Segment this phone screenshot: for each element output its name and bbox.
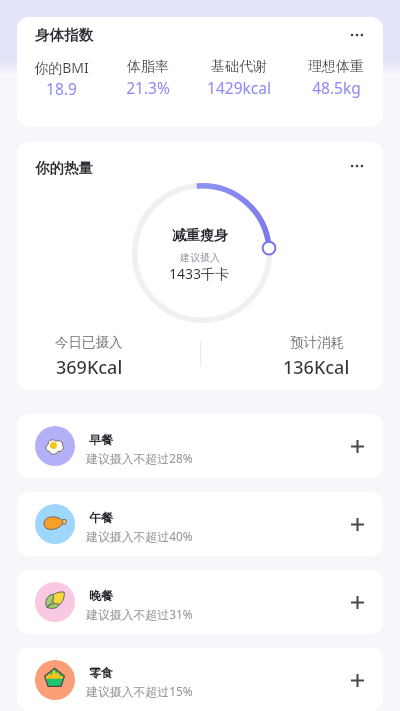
staticText: 体脂率 [127, 58, 169, 76]
staticText: 预计消耗 [290, 334, 344, 351]
staticText: 你的BMI [34, 58, 89, 77]
staticText: 零食 [89, 665, 113, 680]
button[interactable]: 添加 [345, 668, 369, 692]
button[interactable]: 午餐 [17, 492, 383, 556]
staticText: 早餐 [89, 432, 113, 447]
button[interactable]: 早餐 [17, 414, 383, 478]
staticText: 你的热量 [35, 159, 93, 177]
staticText: 建议摄入不超过31% [86, 606, 193, 622]
button[interactable]: 添加 [345, 512, 369, 536]
staticText: 建议摄入不超过40% [86, 528, 193, 544]
button[interactable]: 添加 [345, 590, 369, 614]
button[interactable]: 晚餐 [17, 570, 383, 634]
staticText: 晚餐 [89, 588, 113, 603]
staticText: 今日已摄入 [55, 334, 123, 351]
staticText: 午餐 [89, 510, 113, 525]
button[interactable]: 零食 [17, 648, 383, 711]
staticText: 18.9 [46, 78, 77, 99]
staticText: 理想体重 [308, 58, 364, 76]
staticText: 建议摄入不超过28% [86, 450, 193, 466]
staticText: 136Kcal [283, 355, 350, 380]
staticText: 1433千卡 [169, 264, 230, 283]
staticText: 建议摄入 [180, 251, 220, 264]
staticText: 基础代谢 [211, 58, 267, 76]
button[interactable]: 添加 [345, 434, 369, 458]
staticText: 48.5kg [312, 77, 361, 98]
staticText: 减重瘦身 [172, 227, 228, 245]
staticText: 369Kcal [56, 355, 123, 380]
button[interactable]: 更多 [344, 22, 370, 48]
staticText: 身体指数 [35, 26, 93, 44]
button[interactable]: 更多 [344, 153, 370, 179]
staticText: 1429kcal [207, 77, 271, 98]
staticText: 建议摄入不超过15% [86, 683, 193, 699]
button[interactable]: 身体指数 [17, 17, 383, 127]
staticText: 21.3% [126, 77, 170, 98]
